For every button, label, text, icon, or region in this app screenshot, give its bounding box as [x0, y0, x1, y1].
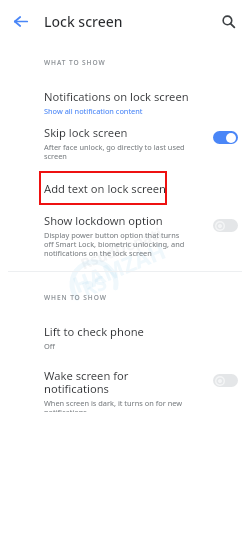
staticText: Notifications on lock screen	[44, 89, 189, 104]
button[interactable]: Show lockdown option	[0, 213, 250, 265]
staticText: Wake screen for notifications	[44, 368, 190, 396]
staticText: Display power button option that turns o…	[44, 230, 185, 259]
staticText: Lock screen	[44, 12, 123, 31]
staticText: Show lockdown option	[44, 213, 163, 228]
staticText: HAMZAH	[68, 235, 170, 299]
staticText: Show all notification content	[44, 106, 143, 116]
staticText: RsudDepati	[77, 223, 165, 273]
button[interactable]: Notifications on lock screen	[0, 89, 250, 121]
button[interactable]: Toggle off	[213, 374, 238, 387]
button[interactable]: Toggle off	[213, 219, 238, 232]
staticText: WHEN TO SHOW	[44, 293, 107, 302]
staticText: Add text on lock screen	[44, 181, 166, 196]
button[interactable]: Back	[6, 7, 34, 35]
button[interactable]: Skip lock screen	[0, 125, 250, 169]
button[interactable]: Add text on lock screen	[39, 171, 167, 205]
staticText: Skip lock screen	[44, 125, 128, 140]
staticText: RS	[78, 268, 111, 303]
staticText: WHAT TO SHOW	[44, 58, 106, 67]
button[interactable]: Wake screen for notifications	[0, 368, 250, 412]
staticText: Lift to check phone	[44, 324, 144, 339]
staticText: When screen is dark, it turns on for new…	[44, 398, 183, 412]
button[interactable]: Lift to check phone	[0, 324, 250, 354]
staticText: After face unlock, go directly to last u…	[44, 142, 185, 162]
button[interactable]: Search	[214, 7, 242, 35]
staticText: Off	[44, 341, 55, 351]
button[interactable]: Toggle on	[213, 131, 238, 144]
